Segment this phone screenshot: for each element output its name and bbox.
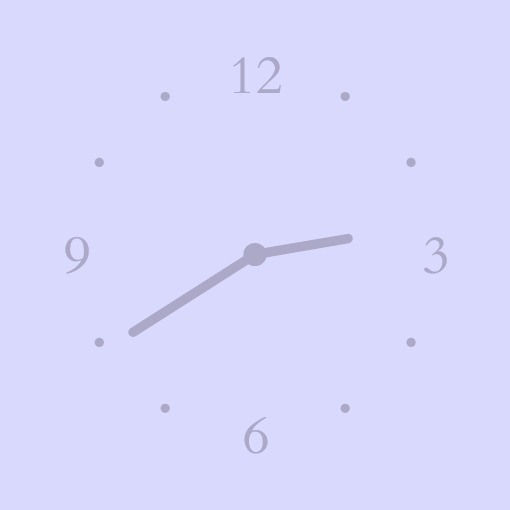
staticText: 3 [422, 221, 450, 293]
staticText: 12 [228, 41, 283, 113]
staticText: 9 [63, 221, 91, 293]
button[interactable]: Analog watch face showing 2:40 [0, 0, 510, 510]
staticText: 6 [242, 401, 270, 473]
